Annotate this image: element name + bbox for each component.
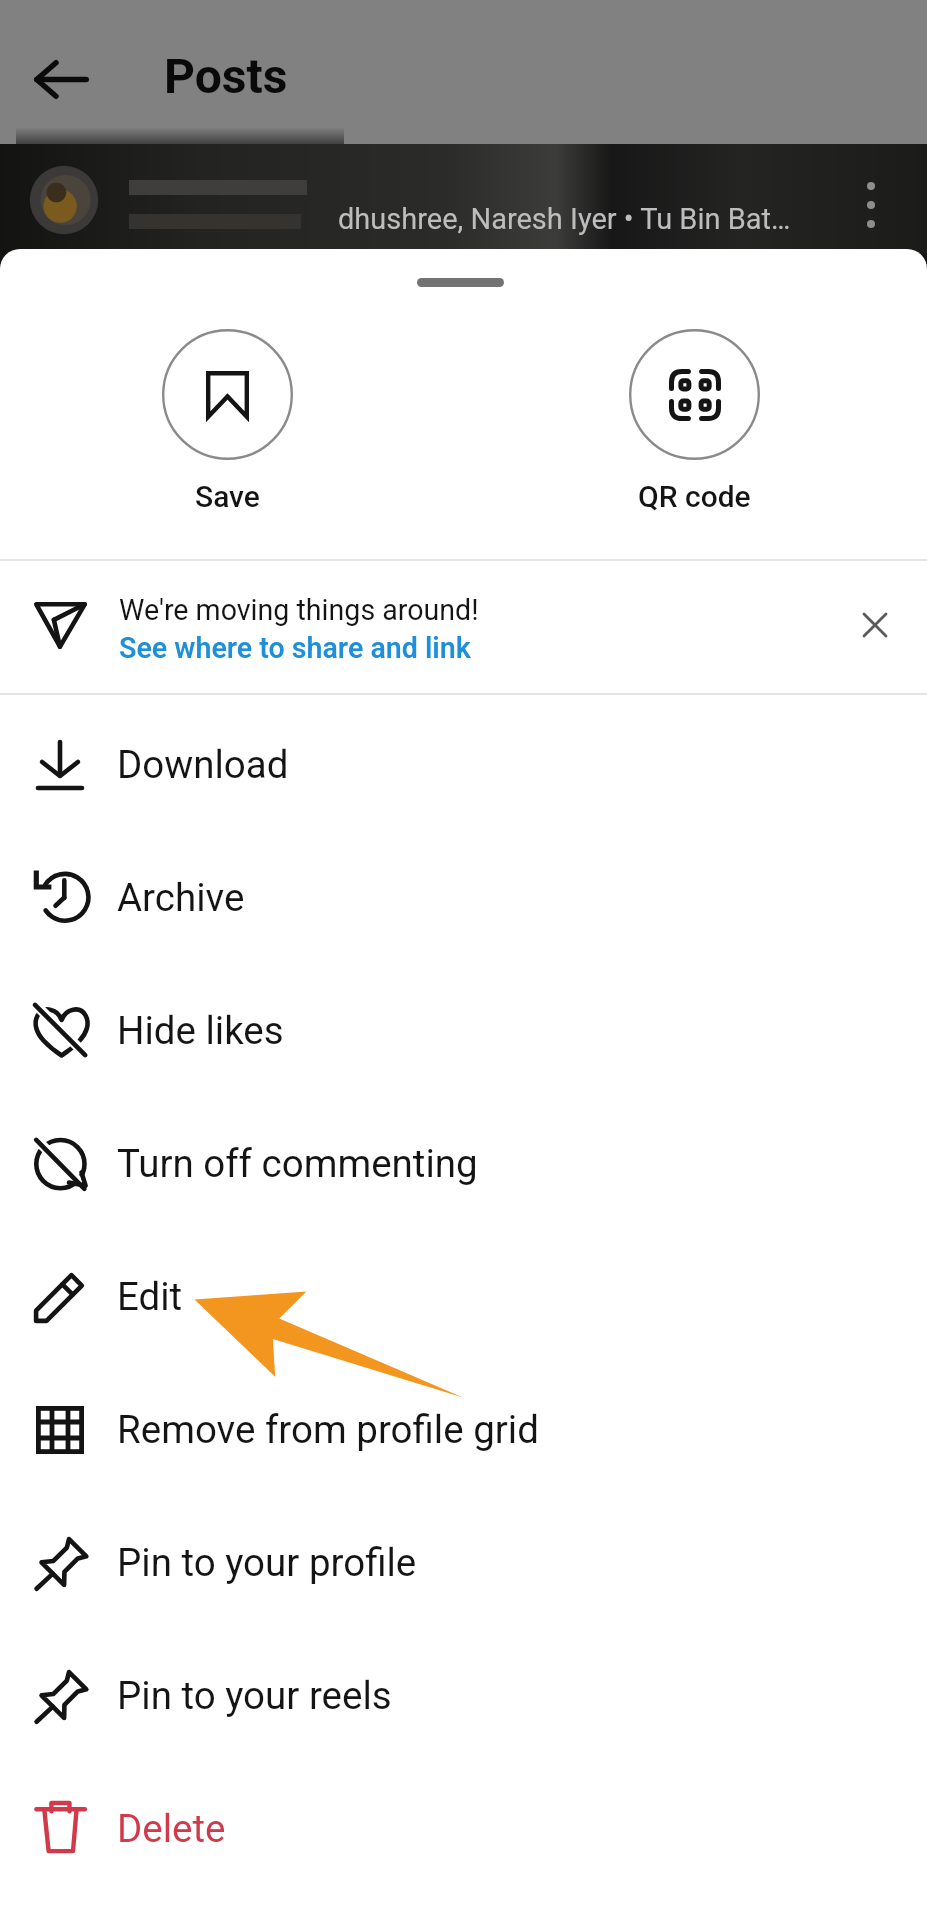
button[interactable]: Download bbox=[0, 698, 927, 831]
staticText: Delete bbox=[117, 1806, 226, 1851]
staticText: QR code bbox=[638, 479, 751, 514]
button[interactable]: QR code bbox=[602, 329, 786, 514]
button[interactable]: Edit bbox=[0, 1230, 927, 1363]
button[interactable]: Back bbox=[30, 58, 92, 100]
staticText: Save bbox=[195, 479, 260, 514]
button[interactable]: Hide likes bbox=[0, 964, 927, 1097]
staticText: Hide likes bbox=[117, 1008, 284, 1053]
staticText: Pin to your reels bbox=[117, 1673, 392, 1718]
button[interactable]: Save bbox=[135, 329, 319, 514]
button[interactable]: Dismiss bbox=[835, 585, 915, 665]
button[interactable]: See where to share and link bbox=[119, 631, 471, 665]
staticText: Edit bbox=[117, 1274, 183, 1319]
staticText: We're moving things around! bbox=[119, 593, 479, 627]
button[interactable]: Delete bbox=[0, 1762, 927, 1895]
staticText: dhushree, Naresh Iyer • Tu Bin Bat… bbox=[338, 202, 791, 236]
button[interactable]: More options bbox=[866, 182, 876, 228]
button[interactable]: Pin to your reels bbox=[0, 1629, 927, 1762]
button[interactable]: Archive bbox=[0, 831, 927, 964]
staticText: Posts bbox=[164, 48, 288, 104]
staticText: Remove from profile grid bbox=[117, 1407, 539, 1452]
staticText: Pin to your profile bbox=[117, 1540, 417, 1585]
staticText: Download bbox=[117, 742, 289, 787]
button[interactable]: Pin to your profile bbox=[0, 1496, 927, 1629]
staticText: Turn off commenting bbox=[117, 1141, 478, 1186]
staticText: Archive bbox=[117, 875, 245, 920]
button[interactable]: Turn off commenting bbox=[0, 1097, 927, 1230]
button[interactable]: Remove from profile grid bbox=[0, 1363, 927, 1496]
